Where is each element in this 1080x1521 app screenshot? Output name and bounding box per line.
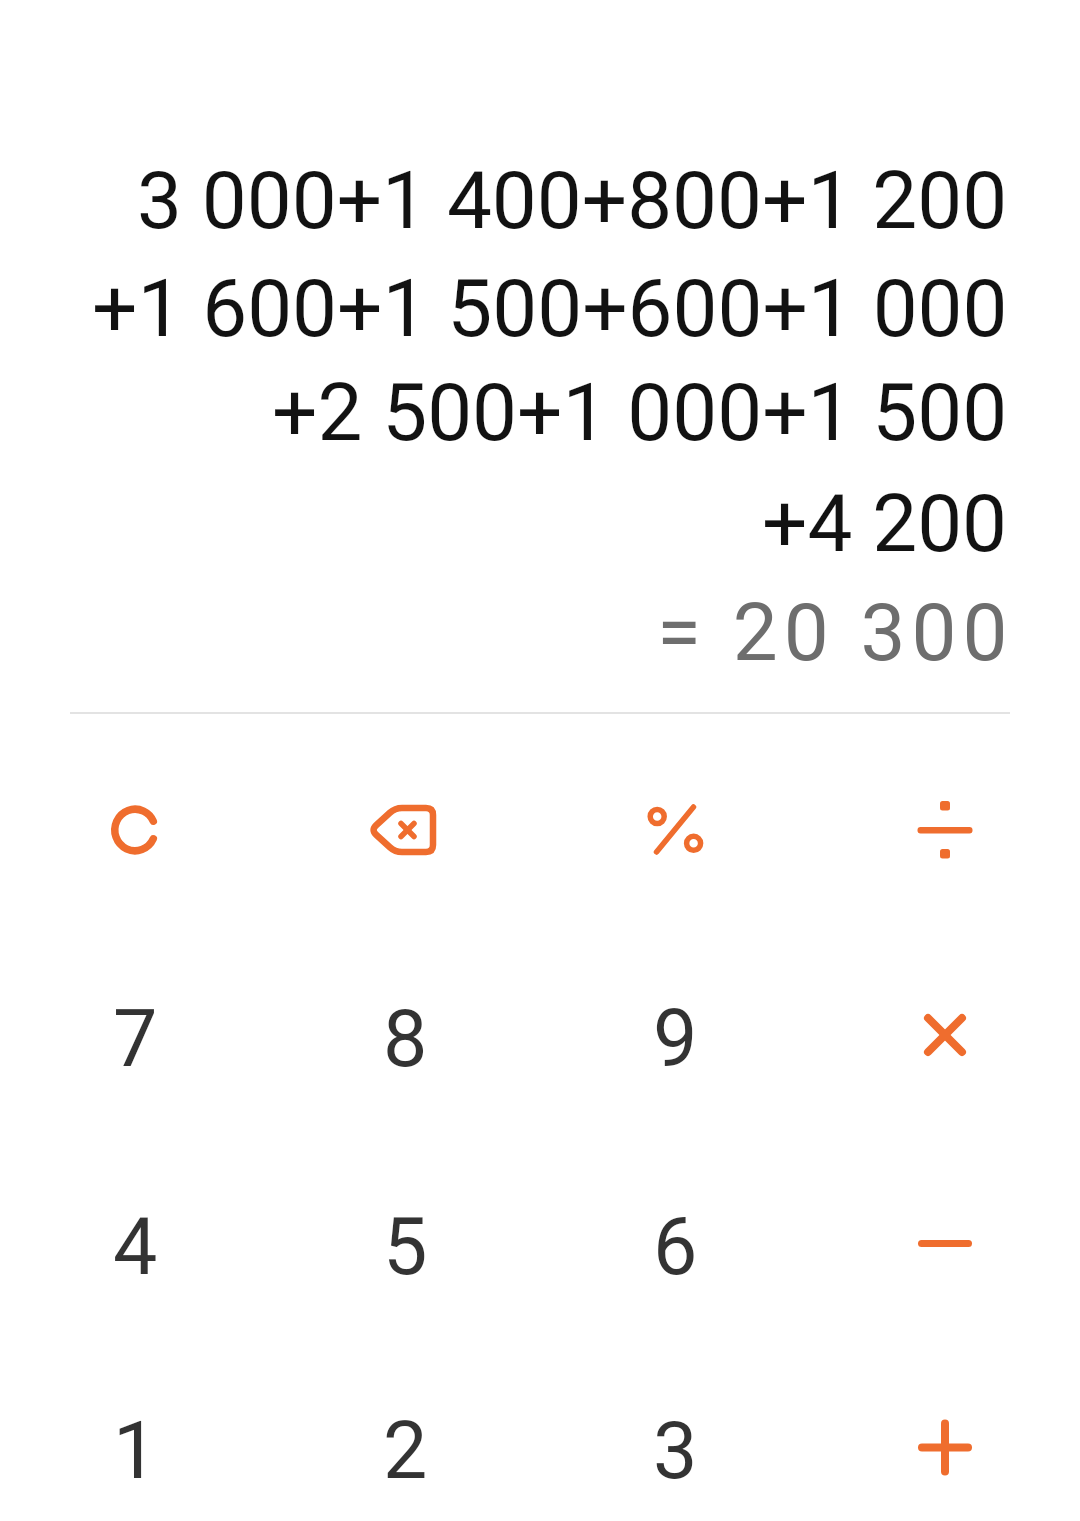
button[interactable] <box>810 933 1080 1141</box>
button[interactable]: 5 <box>270 1141 540 1349</box>
button[interactable] <box>540 727 810 933</box>
button[interactable]: 6 <box>540 1141 810 1349</box>
staticText: +4 200 <box>762 477 1008 571</box>
button[interactable]: 3 <box>540 1349 810 1521</box>
staticText: 7 <box>113 993 158 1086</box>
staticText: 2 <box>383 1405 428 1498</box>
staticText: 8 <box>383 993 428 1086</box>
staticText: +1 600+1 500+600+1 000 <box>92 262 1008 356</box>
button[interactable]: 4 <box>0 1141 270 1349</box>
button[interactable] <box>810 727 1080 933</box>
button[interactable]: 7 <box>0 933 270 1141</box>
button[interactable]: 2 <box>270 1349 540 1521</box>
staticText: 3 000+1 400+800+1 200 <box>137 154 1008 248</box>
staticText: 3 <box>653 1405 698 1498</box>
staticText: 9 <box>653 993 698 1086</box>
button[interactable] <box>0 727 270 933</box>
staticText: +2 500+1 000+1 500 <box>272 366 1008 460</box>
staticText: 4 <box>113 1201 158 1294</box>
staticText: 1 <box>113 1405 158 1498</box>
staticText: 6 <box>653 1201 698 1294</box>
button[interactable] <box>270 727 540 933</box>
staticText: 5 <box>383 1201 428 1294</box>
staticText: = 20 300 <box>657 586 1014 680</box>
button[interactable] <box>810 1349 1080 1521</box>
button[interactable]: 9 <box>540 933 810 1141</box>
button[interactable]: 1 <box>0 1349 270 1521</box>
button[interactable]: 8 <box>270 933 540 1141</box>
button[interactable] <box>810 1141 1080 1349</box>
